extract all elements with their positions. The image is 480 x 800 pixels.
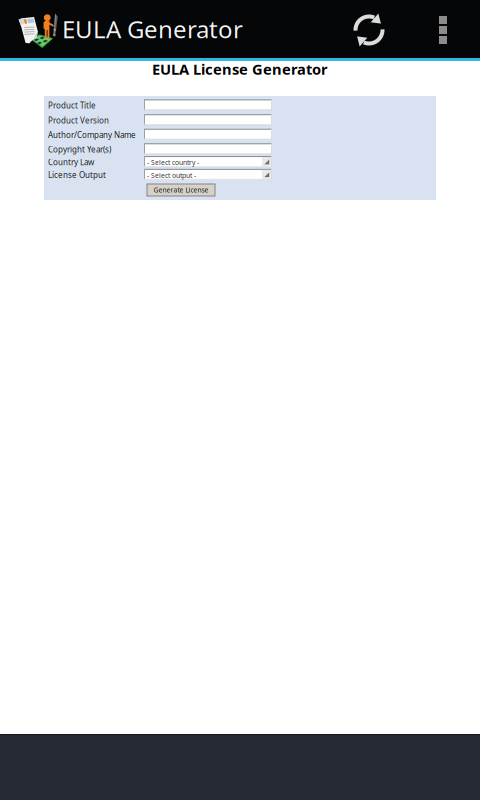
button[interactable]: Generate License <box>147 184 215 196</box>
button[interactable]: License Output <box>144 169 272 180</box>
staticText: EULA Generator <box>62 13 243 45</box>
button[interactable]: Author/Company Name <box>144 129 272 140</box>
staticText: Generate License <box>153 186 208 194</box>
staticText: Product Title <box>48 100 96 111</box>
staticText: - Select output - <box>147 171 196 180</box>
staticText: Country Law <box>48 157 94 167</box>
staticText: Author/Company Name <box>48 129 136 140</box>
button[interactable]: Country Law <box>144 156 272 167</box>
button[interactable]: Product Version <box>144 114 272 125</box>
button[interactable]: Product Title <box>144 99 272 110</box>
staticText: Copyright Year(s) <box>48 144 111 155</box>
button[interactable]: Copyright Year(s) <box>144 143 272 154</box>
staticText: License Output <box>48 170 106 180</box>
staticText: - Select country - <box>147 158 199 167</box>
staticText: Product Version <box>48 115 109 126</box>
staticText: EULA License Generator <box>152 59 328 79</box>
button[interactable]: More options <box>424 0 480 58</box>
button[interactable]: Refresh <box>341 1 397 59</box>
